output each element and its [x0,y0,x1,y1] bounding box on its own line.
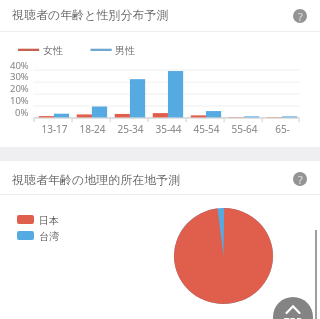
staticText: 20% [10,82,29,95]
staticText: 13-17 [41,122,68,136]
staticText: 25-34 [117,122,144,136]
staticText: 18-24 [79,122,106,136]
staticText: 0% [15,106,29,119]
staticText: 女性 [43,44,63,57]
button[interactable]: Help [293,9,307,23]
staticText: 35-44 [155,122,182,136]
staticText: 65- [275,122,290,136]
staticText: 40% [10,59,29,72]
staticText: 男性 [115,44,135,57]
staticText: 視聴者年齢の地理的所在地予測 [12,172,181,187]
staticText: 日本 [39,214,59,227]
staticText: TOP [284,314,302,319]
staticText: 30% [10,70,29,83]
staticText: 10% [10,94,29,107]
button[interactable]: Help [293,172,307,186]
staticText: 台湾 [39,230,59,243]
staticText: 視聴者の年齢と性別分布予測 [12,7,169,22]
staticText: ? [298,9,303,23]
staticText: 55-64 [231,122,258,136]
button[interactable]: Scroll to top [273,297,313,319]
staticText: ? [298,172,303,186]
staticText: 45-54 [193,122,220,136]
